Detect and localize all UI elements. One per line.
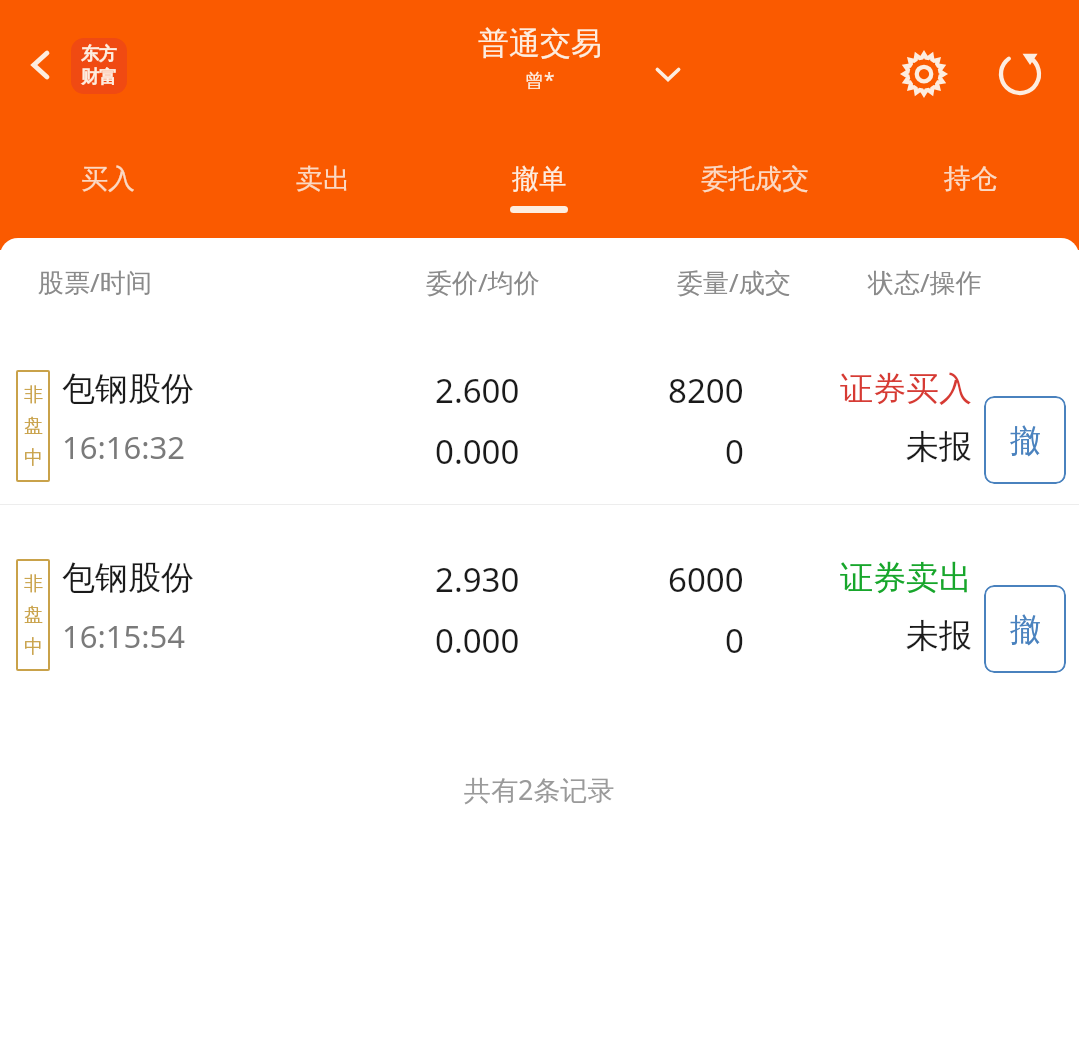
- button[interactable]: 撤单: [431, 150, 647, 238]
- staticText: 非: [24, 383, 43, 407]
- staticText: 16:16:32: [62, 426, 186, 468]
- staticText: 0: [725, 429, 744, 474]
- staticText: 包钢股份: [62, 557, 194, 599]
- button[interactable]: 非: [0, 316, 1079, 504]
- staticText: 0: [725, 618, 744, 663]
- staticText: 股票/时间: [38, 264, 152, 300]
- staticText: 撤单: [512, 162, 566, 196]
- staticText: 未报: [906, 426, 972, 468]
- staticText: 状态/操作: [868, 264, 982, 300]
- staticText: 8200: [668, 368, 744, 413]
- button[interactable]: 非: [0, 505, 1079, 693]
- staticText: 6000: [668, 557, 744, 602]
- staticText: 持仓: [944, 162, 998, 196]
- button[interactable]: 普通交易: [478, 24, 602, 93]
- button[interactable]: 委托成交: [647, 150, 863, 238]
- staticText: 2.600: [435, 368, 520, 413]
- staticText: 0.000: [435, 429, 520, 474]
- staticText: 委价/均价: [426, 264, 540, 300]
- staticText: 未报: [906, 615, 972, 657]
- staticText: 2.930: [435, 557, 520, 602]
- staticText: 盘: [24, 603, 43, 627]
- staticText: 证券买入: [840, 368, 972, 410]
- staticText: 中: [24, 446, 43, 470]
- staticText: 共有2条记录: [464, 771, 615, 808]
- staticText: 中: [24, 635, 43, 659]
- button[interactable]: 持仓: [863, 150, 1079, 238]
- button[interactable]: Settings: [890, 40, 958, 108]
- staticText: 东方: [81, 43, 117, 66]
- staticText: 普通交易: [478, 24, 602, 63]
- button[interactable]: 撤: [984, 396, 1066, 484]
- button[interactable]: 卖出: [215, 150, 431, 238]
- staticText: 0.000: [435, 618, 520, 663]
- staticText: 卖出: [296, 162, 350, 196]
- staticText: 委托成交: [701, 162, 809, 196]
- staticText: 撤: [1010, 421, 1041, 460]
- staticText: 16:15:54: [62, 615, 186, 657]
- button[interactable]: 撤: [984, 585, 1066, 673]
- staticText: 包钢股份: [62, 368, 194, 410]
- staticText: 证券卖出: [840, 557, 972, 599]
- staticText: 委量/成交: [677, 264, 791, 300]
- button[interactable]: 东方财富: [71, 38, 127, 94]
- button[interactable]: 买入: [0, 150, 215, 238]
- staticText: 买入: [81, 162, 135, 196]
- button[interactable]: Back: [12, 36, 70, 94]
- staticText: 撤: [1010, 610, 1041, 649]
- button[interactable]: Switch account: [640, 46, 696, 102]
- staticText: 盘: [24, 414, 43, 438]
- staticText: 财富: [81, 66, 117, 89]
- staticText: 曾*: [525, 67, 555, 93]
- button[interactable]: Refresh: [986, 40, 1054, 108]
- staticText: 非: [24, 572, 43, 596]
